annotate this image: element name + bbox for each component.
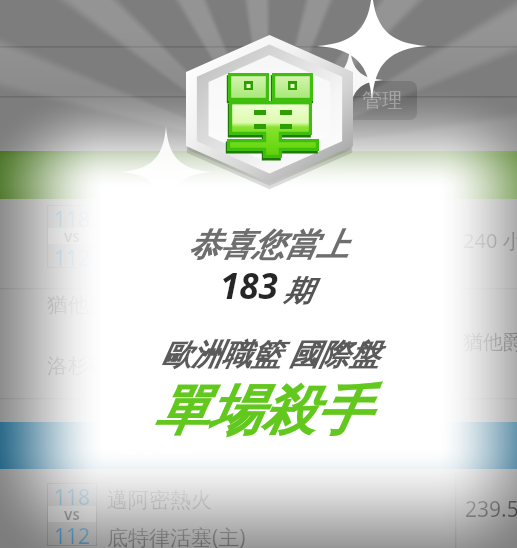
staticText: 底特律活塞(主) [107, 523, 246, 548]
staticText: 單場殺手 [154, 378, 370, 446]
staticText: 單場殺手 [156, 380, 372, 448]
staticText: 單場殺手 [153, 377, 369, 445]
staticText: 單場殺手 [153, 378, 369, 446]
staticText: 單場殺手 [155, 378, 371, 446]
staticText: 單場殺手 [151, 380, 367, 448]
staticText: 期 [283, 273, 312, 310]
staticText: 單場殺手 [156, 377, 372, 445]
staticText: 單場殺手 [153, 373, 369, 441]
staticText: 單場殺手 [151, 374, 367, 442]
staticText: 240 小 [463, 227, 517, 254]
staticText: 112 [54, 244, 91, 268]
staticText: 單場殺手 [152, 379, 368, 447]
staticText: 猶他爵 [463, 330, 517, 355]
staticText: 單場殺手 [150, 376, 366, 444]
staticText: 單場殺手 [152, 376, 368, 444]
staticText: 單場殺手 [150, 375, 366, 443]
staticText: 單場殺手 [150, 379, 366, 447]
staticText: 邁阿密熱火 [107, 487, 212, 513]
staticText: 118 [54, 205, 91, 228]
staticText: VS [64, 228, 80, 244]
button[interactable]: 管理 [347, 81, 417, 120]
staticText: 單場殺手 [154, 375, 370, 443]
staticText: 單場殺手 [149, 376, 365, 444]
staticText: 單場殺手 [153, 379, 369, 447]
staticText: 單場殺手 [151, 379, 367, 447]
staticText: 單場殺手 [152, 375, 368, 443]
staticText: 單場殺手 [155, 375, 371, 443]
staticText: 單場殺手 [151, 375, 367, 443]
staticText: 單場殺手 [152, 374, 368, 442]
staticText: 單場殺手 [156, 375, 372, 443]
staticText: 單場殺手 [153, 376, 369, 444]
staticText: 單場殺手 [154, 374, 370, 442]
staticText: 183 [220, 262, 278, 310]
staticText: 單場殺手 [153, 374, 369, 442]
staticText: 單場殺手 [155, 377, 371, 445]
staticText: 管理 [362, 88, 402, 113]
staticText: 單場殺手 [155, 374, 371, 442]
staticText: 單場殺手 [151, 378, 367, 446]
staticText: 單場殺手 [149, 378, 365, 446]
staticText: 歐洲職籃 國際盤 [161, 333, 379, 374]
staticText: 單場殺手 [156, 379, 372, 447]
staticText: 239.5 [465, 495, 517, 524]
staticText: 單場殺手 [150, 380, 366, 448]
staticText: 單場殺手 [154, 381, 370, 449]
staticText: 單場殺手 [154, 380, 370, 448]
staticText: 運彩盤賠率 [118, 433, 218, 458]
staticText: 洛杉磯快艇 [47, 353, 152, 379]
staticText: VS [64, 506, 80, 522]
staticText: 單場殺手 [151, 376, 367, 444]
staticText: 單場殺手 [154, 373, 370, 441]
staticText: 單場殺手 [157, 378, 373, 446]
staticText: 單場殺手 [154, 376, 370, 444]
staticText: 單場殺手 [152, 378, 368, 446]
staticText: 單場殺手 [149, 377, 365, 445]
staticText: 112 [54, 522, 91, 546]
staticText: 118 [54, 483, 91, 506]
staticText: 單場殺手 [156, 376, 372, 444]
staticText: 單場殺手 [156, 378, 372, 446]
staticText: 單場殺手 [154, 379, 370, 447]
staticText: 單場殺手 [157, 377, 373, 445]
staticText: 單場殺手 [153, 381, 369, 449]
staticText: 單場殺手 [153, 380, 369, 448]
staticText: 單場殺手 [152, 381, 368, 449]
staticText: 單場殺手 [152, 377, 368, 445]
staticText: 單場殺手 [152, 373, 368, 441]
staticText: 單場殺手 [157, 376, 373, 444]
staticText: 單場殺手 [150, 378, 366, 446]
staticText: 單場殺手 [155, 379, 371, 447]
staticText: 單場殺手 [155, 376, 371, 444]
staticText: 單場殺手 [150, 374, 366, 442]
staticText: 單場殺手 [153, 375, 369, 443]
staticText: 猶他爵士 [47, 292, 131, 318]
staticText: 洛杉磯快艇(主) [108, 251, 247, 280]
staticText: 單場殺手 [150, 377, 366, 445]
staticText: 單場殺手 [155, 380, 371, 448]
staticText: 恭喜您當上 [188, 225, 348, 265]
staticText: 單場殺手 [152, 380, 368, 448]
staticText: 單場殺手 [156, 374, 372, 442]
staticText: 單場殺手 [154, 377, 370, 445]
staticText: 單場殺手 [151, 377, 367, 445]
